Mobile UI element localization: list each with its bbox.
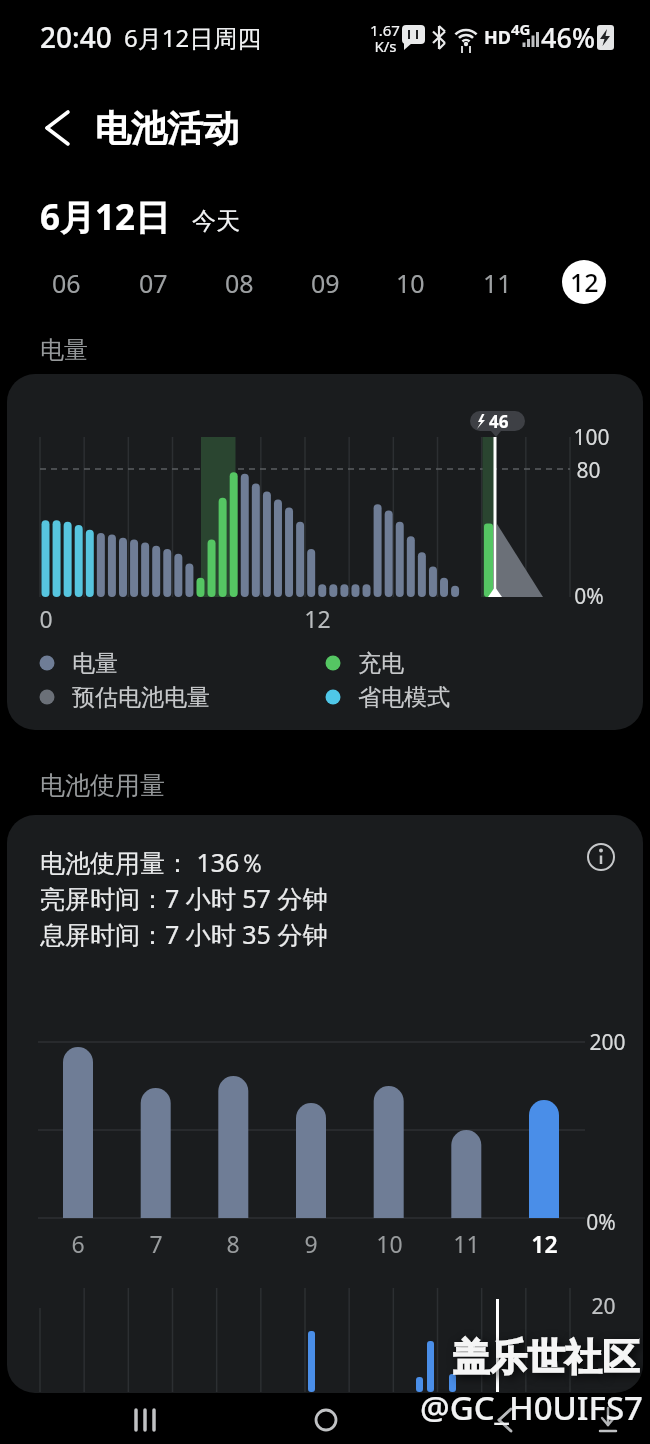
button[interactable]	[100, 1396, 190, 1442]
staticText: 电池活动	[95, 106, 239, 151]
staticText: 46	[489, 410, 509, 433]
staticText: 盖乐世社区	[452, 1334, 640, 1381]
staticText: 10	[376, 1228, 403, 1259]
staticText: 6月12日周四	[124, 21, 262, 54]
staticText: 09	[311, 266, 340, 300]
staticText: 200	[589, 1028, 626, 1057]
button[interactable]: 11	[472, 258, 522, 308]
staticText: 11	[453, 1228, 480, 1259]
staticText: 80	[576, 456, 601, 485]
staticText: 电池使用量	[40, 770, 165, 801]
button[interactable]	[281, 1396, 371, 1442]
staticText: 8	[226, 1228, 240, 1259]
staticText: 充电	[358, 649, 404, 678]
button[interactable]: 08	[214, 258, 264, 308]
staticText: 0	[39, 603, 53, 634]
staticText: 0%	[574, 582, 604, 611]
button[interactable]: 09	[300, 258, 350, 308]
button[interactable]	[460, 1396, 550, 1442]
staticText: 4G	[511, 19, 531, 39]
staticText: 息屏时间：7 小时 35 分钟	[40, 917, 328, 951]
staticText: 电量	[72, 649, 118, 678]
staticText: 46%	[541, 19, 595, 56]
staticText: 10	[396, 266, 425, 300]
staticText: 12	[531, 1228, 558, 1259]
staticText: 12	[304, 603, 331, 634]
staticText: 11	[483, 266, 512, 300]
staticText: K/s	[374, 36, 397, 56]
staticText: 9	[304, 1228, 318, 1259]
button[interactable]	[30, 103, 80, 153]
staticText: 预估电池电量	[72, 683, 210, 712]
staticText: 06	[52, 266, 81, 300]
staticText: 20:40	[40, 18, 112, 56]
staticText: 今天	[192, 206, 240, 236]
staticText: @GC_H0UIFS7	[420, 1385, 643, 1430]
staticText: 0%	[586, 1208, 616, 1237]
button[interactable]	[575, 1396, 641, 1442]
staticText: 07	[139, 266, 168, 300]
button[interactable]	[579, 835, 623, 879]
staticText: 电量	[40, 335, 88, 365]
staticText: HD	[484, 25, 511, 50]
staticText: 电池使用量： 136％	[40, 845, 265, 879]
button[interactable]: 12	[559, 257, 609, 307]
button[interactable]: 07	[128, 258, 178, 308]
button[interactable]: 06	[41, 258, 91, 308]
staticText: 100	[573, 423, 610, 452]
staticText: 12	[570, 265, 599, 299]
staticText: 6	[71, 1228, 85, 1259]
staticText: 亮屏时间：7 小时 57 分钟	[40, 881, 328, 915]
button[interactable]: 10	[385, 258, 435, 308]
staticText: 08	[225, 266, 254, 300]
staticText: 6月12日	[40, 193, 171, 241]
staticText: 省电模式	[358, 683, 450, 712]
staticText: 7	[149, 1228, 163, 1259]
staticText: 1.67	[370, 20, 400, 40]
staticText: 20	[591, 1292, 616, 1321]
